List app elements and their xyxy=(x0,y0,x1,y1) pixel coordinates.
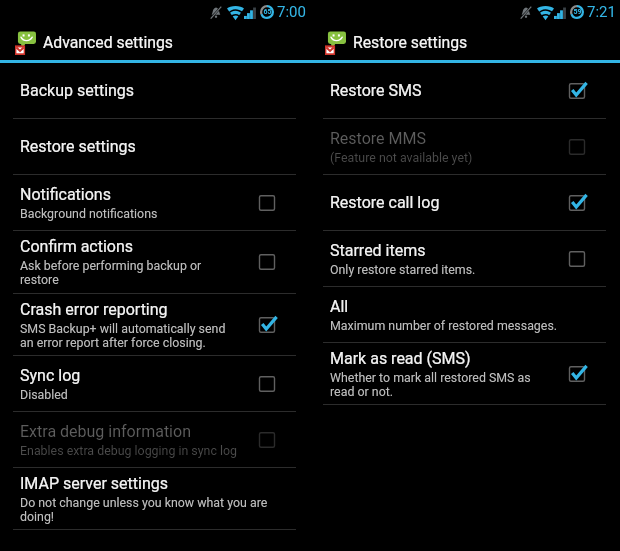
button[interactable]: Notifications xyxy=(0,175,310,230)
staticText: Restore settings xyxy=(353,33,468,52)
staticText: IMAP server settings xyxy=(20,474,168,493)
staticText: Confirm actions xyxy=(20,237,134,256)
staticText: Notifications xyxy=(20,185,111,204)
staticText: Ask before performing backup or restore xyxy=(20,258,202,287)
staticText: 65 xyxy=(263,8,272,16)
button[interactable]: All xyxy=(310,287,620,342)
staticText: Starred items xyxy=(330,241,426,260)
staticText: Restore settings xyxy=(20,137,136,156)
staticText: Disabled xyxy=(20,387,68,402)
staticText: 7:00 xyxy=(277,3,306,21)
staticText: Only restore starred items. xyxy=(330,262,476,277)
staticText: Advanced settings xyxy=(43,33,173,52)
staticText: (Feature not available yet) xyxy=(330,150,473,165)
staticText: Restore MMS xyxy=(330,129,426,148)
button[interactable]: Backup settings xyxy=(0,63,310,118)
staticText: Crash error reporting xyxy=(20,300,168,319)
staticText: Do not change unless you know what you a… xyxy=(20,495,268,524)
staticText: Extra debug information xyxy=(20,422,191,441)
staticText: 59 xyxy=(573,8,582,16)
staticText: Background notifications xyxy=(20,206,158,221)
button[interactable]: Extra debug information xyxy=(0,412,310,467)
staticText: Sync log xyxy=(20,366,81,385)
staticText: Maximum number of restored messages. xyxy=(330,318,558,333)
staticText: SMS Backup+ will automatically send an e… xyxy=(20,321,226,350)
button[interactable]: Restore settings xyxy=(310,24,620,60)
button[interactable]: Mark as read (SMS) xyxy=(310,343,620,404)
staticText: Whether to mark all restored SMS as read… xyxy=(330,370,531,399)
button[interactable]: Advanced settings xyxy=(0,24,310,60)
button[interactable]: Restore settings xyxy=(0,119,310,174)
button[interactable]: Restore SMS xyxy=(310,63,620,118)
staticText: All xyxy=(330,297,349,316)
button[interactable]: Starred items xyxy=(310,231,620,286)
button[interactable]: Restore call log xyxy=(310,175,620,230)
button[interactable]: Crash error reporting xyxy=(0,294,310,355)
button[interactable]: Restore MMS xyxy=(310,119,620,174)
staticText: 7:21 xyxy=(587,3,616,21)
button[interactable]: IMAP server settings xyxy=(0,468,310,529)
button[interactable]: Sync log xyxy=(0,356,310,411)
button[interactable]: Confirm actions xyxy=(0,231,310,293)
staticText: Restore SMS xyxy=(330,81,422,100)
staticText: Mark as read (SMS) xyxy=(330,349,471,368)
staticText: Restore call log xyxy=(330,193,440,212)
staticText: Backup settings xyxy=(20,81,135,100)
staticText: Enables extra debug logging in sync log xyxy=(20,443,238,458)
